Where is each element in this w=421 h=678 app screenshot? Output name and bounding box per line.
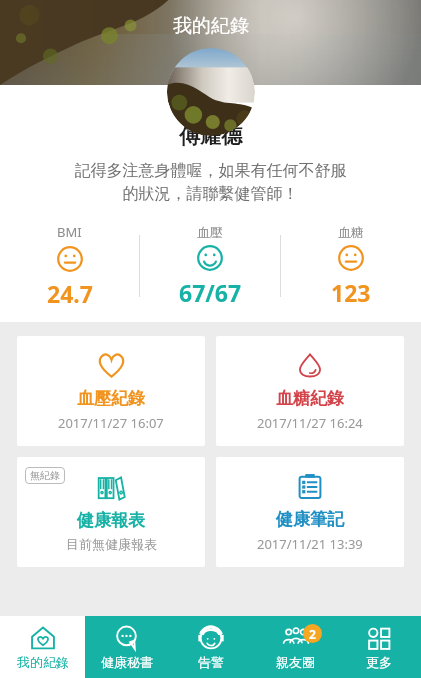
button[interactable]: 更多	[337, 616, 421, 678]
staticText: 血壓紀錄	[77, 388, 145, 409]
staticText: 我的紀錄	[17, 654, 69, 670]
staticText: 我的紀錄	[173, 14, 249, 38]
staticText: 傅耀德	[0, 123, 421, 149]
other: 健康秘書	[114, 625, 140, 651]
staticText: 67/67	[179, 277, 242, 308]
other: 親友圈	[283, 625, 309, 651]
other: 更多	[366, 625, 392, 651]
button[interactable]: 我的紀錄	[0, 616, 85, 678]
button[interactable]: 血壓	[140, 220, 280, 312]
button[interactable]: 無紀錄	[17, 457, 205, 567]
staticText: 健康報表	[77, 510, 145, 531]
button[interactable]: 健康秘書	[85, 616, 169, 678]
staticText: 2017/11/21 13:39	[257, 535, 363, 553]
staticText: 健康秘書	[101, 654, 153, 670]
staticText: 記得多注意身體喔，如果有任何不舒服 的狀況，請聯繫健管師！	[20, 161, 401, 204]
staticText: 123	[331, 277, 371, 308]
staticText: 2	[309, 626, 316, 642]
staticText: 2017/11/27 16:24	[257, 414, 363, 432]
staticText: 血糖紀錄	[276, 388, 344, 409]
staticText: 24.7	[47, 278, 93, 309]
other: 告警	[198, 625, 224, 651]
staticText: BMI	[57, 223, 82, 241]
button[interactable]: BMI	[0, 220, 139, 312]
button[interactable]: 健康筆記	[216, 457, 404, 567]
button[interactable]: 告警	[169, 616, 253, 678]
staticText: 告警	[198, 654, 224, 670]
staticText: 目前無健康報表	[66, 536, 157, 552]
staticText: 親友圈	[276, 654, 315, 670]
button[interactable]: Profile photo	[167, 48, 255, 136]
button[interactable]: 血壓紀錄	[17, 336, 205, 446]
staticText: 更多	[366, 654, 392, 670]
button[interactable]: 親友圈	[253, 616, 337, 678]
staticText: 健康筆記	[276, 509, 344, 530]
button[interactable]: 血糖紀錄	[216, 336, 404, 446]
button[interactable]: 血糖	[281, 220, 421, 312]
other: 我的紀錄	[30, 625, 56, 651]
staticText: 2017/11/27 16:07	[58, 414, 164, 432]
staticText: 血糖	[338, 224, 364, 240]
staticText: 無紀錄	[30, 469, 60, 482]
staticText: 血壓	[197, 224, 223, 240]
